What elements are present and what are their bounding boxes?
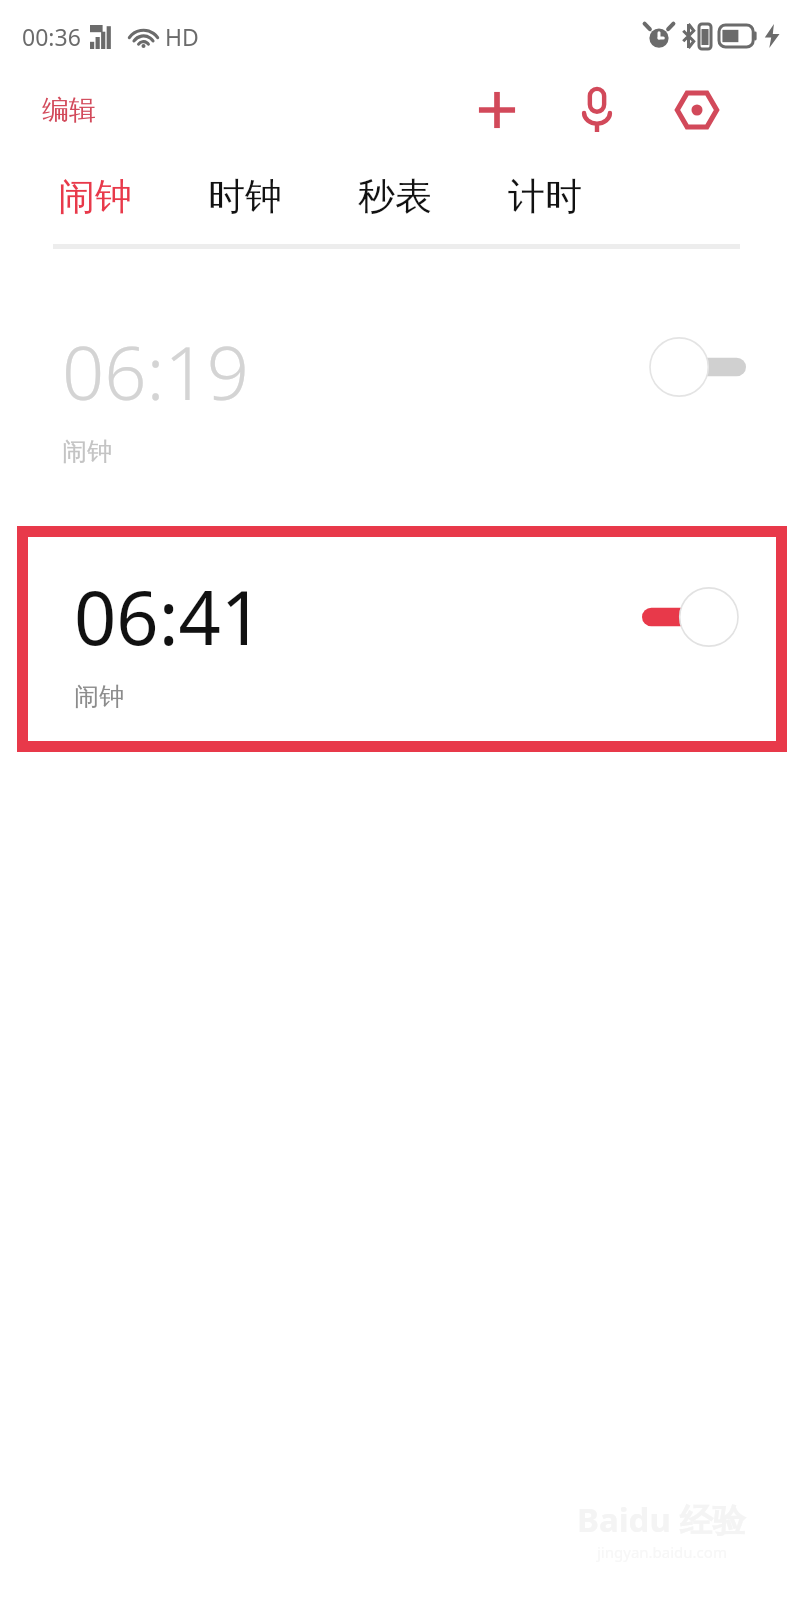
staticText: 06:41 (74, 566, 264, 667)
staticText: Baidu 经验 (577, 1497, 746, 1542)
staticText: 06:19 (62, 321, 250, 422)
staticText: 00:36 (22, 21, 81, 52)
button[interactable]: Add alarm (464, 77, 530, 143)
button[interactable]: Settings (664, 77, 730, 143)
button[interactable]: Voice (564, 77, 630, 143)
staticText: 计时 (508, 173, 582, 220)
staticText: 闹钟 (74, 681, 124, 712)
button[interactable]: 时钟 (204, 165, 286, 228)
button[interactable]: 计时 (504, 165, 586, 228)
button[interactable]: 06:19 (0, 311, 802, 476)
staticText: 编辑 (42, 93, 96, 127)
button[interactable]: 秒表 (354, 165, 436, 228)
staticText: 闹钟 (62, 436, 112, 467)
button[interactable]: 06:41 (28, 537, 776, 741)
staticText: HD (165, 21, 199, 52)
button[interactable]: Alarm on (642, 586, 738, 648)
button[interactable]: 闹钟 (54, 165, 136, 228)
staticText: 秒表 (358, 173, 432, 220)
button[interactable]: Alarm off (650, 336, 746, 398)
staticText: 闹钟 (58, 173, 132, 220)
button[interactable]: 编辑 (30, 83, 108, 137)
staticText: 时钟 (208, 173, 282, 220)
